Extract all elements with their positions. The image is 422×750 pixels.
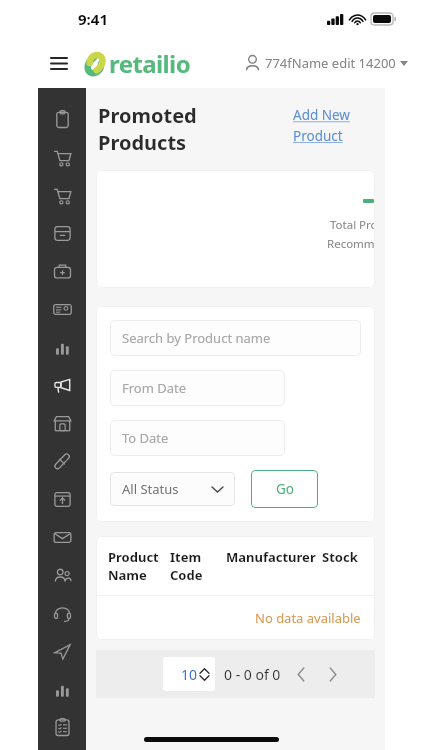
staticText: Search by Product name [122,329,271,347]
button[interactable]: Next page [321,662,345,686]
button[interactable]: Upload [38,480,86,518]
button[interactable]: Send [38,632,86,670]
button[interactable]: Menu [44,48,74,78]
button[interactable]: Medkit [38,252,86,290]
button[interactable]: Total Products [96,170,375,288]
button[interactable]: Purchase [38,176,86,214]
button[interactable]: Customers [38,556,86,594]
staticText: Product Name [108,548,170,584]
button[interactable]: 10 [163,657,215,691]
staticText: Go [276,480,294,498]
button[interactable]: Search by Product name [110,320,361,356]
staticText: Recommended [327,236,375,252]
button[interactable]: Analytics [38,670,86,708]
button[interactable]: Promotions [38,366,86,404]
button[interactable]: Store [38,404,86,442]
button[interactable]: From Date [110,370,285,406]
button[interactable]: Card [38,290,86,328]
staticText: 10 [181,665,198,684]
staticText: retailio [109,47,191,80]
staticText: To Date [122,429,169,447]
staticText: Add New Product [293,106,350,145]
staticText: Stock [322,548,368,566]
button[interactable]: Tasks [38,708,86,746]
button[interactable]: Messages [38,518,86,556]
staticText: 9:41 [78,9,108,29]
staticText: 0 - 0 of 0 [224,665,281,684]
button[interactable]: Orders [38,100,86,138]
button[interactable]: Cart [38,138,86,176]
staticText: Total Products [330,217,375,233]
staticText: No data available [255,609,361,627]
button[interactable]: retailio [84,47,191,80]
staticText: All Status [122,480,179,498]
staticText: Promoted Products [98,102,197,156]
button[interactable]: Add New Product [293,102,373,145]
button[interactable]: Inventory [38,214,86,252]
staticText: Manufacturer [226,548,322,566]
staticText: 774fName edit 14200 [265,54,396,72]
button[interactable]: Products [38,442,86,480]
staticText: Item Code [170,548,226,584]
button[interactable]: Previous page [289,662,313,686]
button[interactable]: Reports [38,328,86,366]
staticText: From Date [122,379,187,397]
button[interactable]: To Date [110,420,285,456]
button[interactable]: Go [251,470,318,508]
button[interactable]: Support [38,594,86,632]
button[interactable]: 774fName edit 14200 [245,48,408,78]
button[interactable]: All Status [110,472,235,506]
